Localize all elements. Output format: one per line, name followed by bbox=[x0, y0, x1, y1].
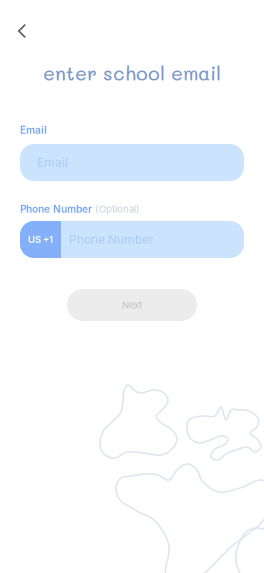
button[interactable]: Email bbox=[20, 144, 244, 181]
staticText: Next bbox=[122, 299, 142, 311]
staticText: Email bbox=[37, 155, 68, 170]
button[interactable]: Phone Number bbox=[61, 221, 244, 258]
staticText: (Optional) bbox=[95, 203, 140, 215]
staticText: US +1 bbox=[28, 234, 53, 245]
staticText: Phone Number bbox=[20, 203, 92, 215]
button[interactable]: Back bbox=[7, 16, 37, 46]
staticText: Phone Number bbox=[69, 232, 154, 247]
button[interactable]: US +1 bbox=[20, 221, 61, 258]
staticText: Email bbox=[20, 124, 47, 136]
button[interactable]: Next bbox=[67, 289, 197, 321]
staticText: enter school email bbox=[43, 60, 221, 85]
